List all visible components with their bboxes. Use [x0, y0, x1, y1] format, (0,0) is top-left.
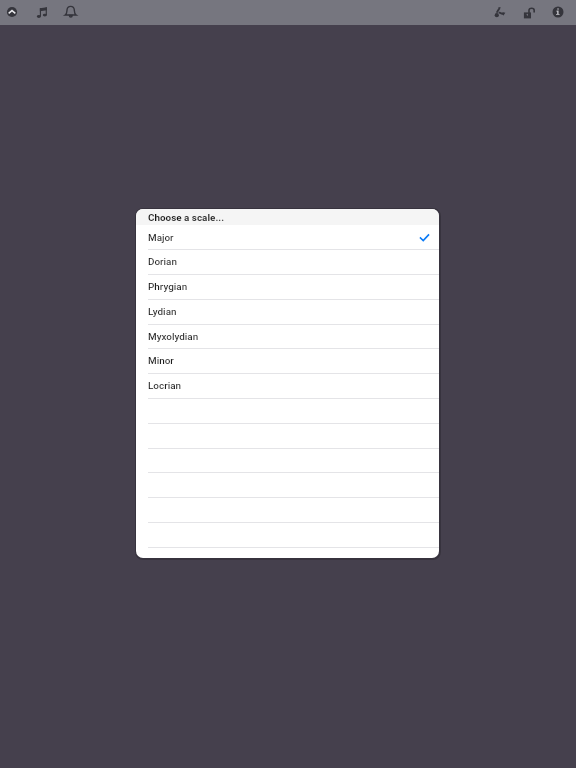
staticText: Dorian: [148, 256, 177, 268]
staticText: Lydian: [148, 306, 177, 318]
button[interactable]: Locrian: [136, 373, 439, 398]
other: Info: [547, 1, 569, 23]
other: Music: [31, 2, 53, 24]
other: System update: [1, 1, 23, 23]
staticText: Choose a scale...: [148, 212, 225, 224]
button[interactable]: [136, 522, 439, 547]
button[interactable]: Lydian: [136, 299, 439, 324]
staticText: Phrygian: [148, 281, 188, 293]
button[interactable]: Phrygian: [136, 274, 439, 299]
button[interactable]: Major: [136, 225, 439, 250]
staticText: Minor: [148, 355, 174, 367]
staticText: Myxolydian: [148, 331, 199, 343]
other: Unlocked: [518, 2, 540, 24]
staticText: Locrian: [148, 380, 182, 392]
button[interactable]: [136, 423, 439, 448]
staticText: Major: [148, 232, 174, 244]
other: USB debugging: [489, 1, 511, 23]
button[interactable]: [136, 472, 439, 497]
button[interactable]: Dorian: [136, 249, 439, 274]
button[interactable]: Myxolydian: [136, 324, 439, 349]
button[interactable]: [136, 448, 439, 473]
other: Notifications: [59, 1, 81, 23]
button[interactable]: [136, 497, 439, 522]
button[interactable]: [136, 547, 439, 558]
button[interactable]: Minor: [136, 348, 439, 373]
button[interactable]: [136, 398, 439, 423]
